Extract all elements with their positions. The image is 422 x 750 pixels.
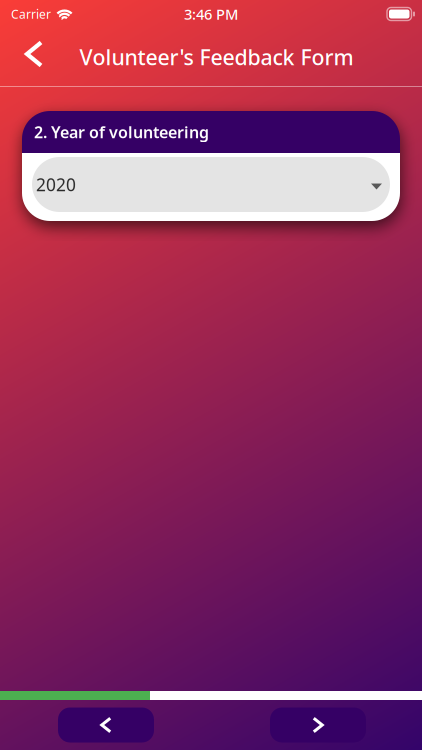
button[interactable]: Back [5, 28, 63, 86]
staticText: 2020 [36, 173, 76, 196]
staticText: Volunteer's Feedback Form [79, 43, 353, 71]
staticText: 2. Year of volunteering [34, 121, 209, 143]
button[interactable]: Year of volunteering [32, 157, 390, 212]
staticText: Carrier [11, 6, 51, 22]
staticText: 3:46 PM [184, 4, 238, 24]
button[interactable]: Next question [270, 707, 366, 742]
button[interactable]: Previous question [58, 707, 154, 742]
